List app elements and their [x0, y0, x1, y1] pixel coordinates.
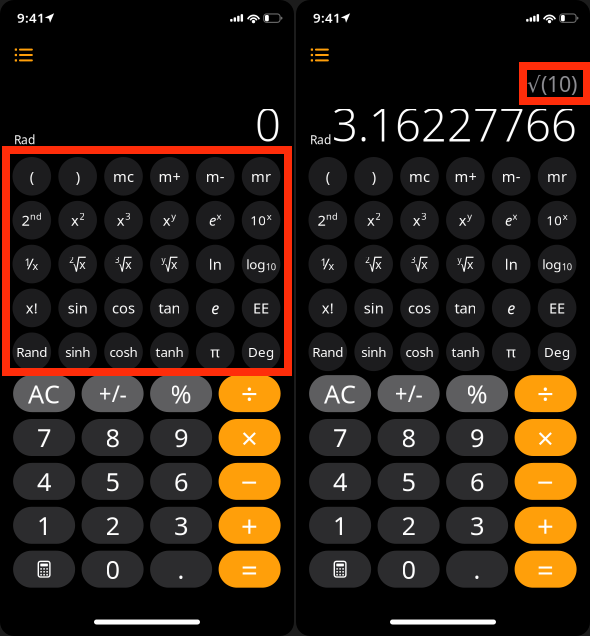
button[interactable]: mr [242, 157, 280, 196]
button[interactable]: x [58, 201, 97, 239]
button[interactable]: 5 [82, 463, 144, 500]
button[interactable]: cos [400, 289, 439, 327]
button[interactable]: 1 [13, 507, 75, 544]
button[interactable]: mc [400, 157, 439, 196]
button[interactable]: Calculator [309, 551, 371, 588]
button[interactable]: tan [150, 289, 189, 327]
button[interactable]: ) [58, 157, 97, 196]
button[interactable]: x [104, 201, 143, 239]
button[interactable]: tanh [150, 332, 189, 371]
button[interactable]: e [196, 201, 234, 239]
button[interactable]: AC [309, 375, 371, 412]
button[interactable]: 7 [309, 419, 371, 456]
button[interactable]: + [219, 507, 281, 544]
button[interactable]: mr [538, 157, 576, 196]
button[interactable]: log [538, 245, 576, 283]
button[interactable]: Rand [308, 332, 347, 371]
button[interactable]: sinh [354, 332, 393, 371]
button[interactable]: m+ [446, 157, 485, 196]
button[interactable]: ÷ [219, 375, 281, 412]
button[interactable]: 4 [13, 463, 75, 500]
button[interactable]: 3 [400, 245, 439, 283]
button[interactable]: 2 [82, 507, 144, 544]
button[interactable]: 4 [309, 463, 371, 500]
button[interactable]: +/- [378, 375, 440, 412]
button[interactable]: m- [492, 157, 530, 196]
button[interactable]: Deg [538, 332, 576, 371]
button[interactable]: 2 [378, 507, 440, 544]
button[interactable]: cosh [400, 332, 439, 371]
button[interactable]: + [515, 507, 577, 544]
button[interactable]: mc [104, 157, 143, 196]
button[interactable]: 2 [354, 245, 393, 283]
button[interactable]: cos [104, 289, 143, 327]
button[interactable]: 2 [308, 201, 347, 239]
button[interactable]: 3 [104, 245, 143, 283]
button[interactable]: ln [492, 245, 530, 283]
button[interactable]: sinh [58, 332, 97, 371]
button[interactable]: 1 [308, 245, 347, 283]
button[interactable]: 2 [12, 201, 51, 239]
button[interactable]: . [446, 551, 508, 588]
button[interactable]: y [446, 245, 485, 283]
button[interactable]: x [150, 201, 189, 239]
button[interactable]: 6 [150, 463, 212, 500]
button[interactable]: 6 [446, 463, 508, 500]
button[interactable]: sin [58, 289, 97, 327]
button[interactable]: 10 [538, 201, 576, 239]
button[interactable]: 10 [242, 201, 280, 239]
button[interactable]: e [196, 289, 234, 327]
button[interactable]: e [492, 201, 530, 239]
button[interactable]: ( [308, 157, 347, 196]
button[interactable]: tan [446, 289, 485, 327]
button[interactable]: = [219, 551, 281, 588]
button[interactable]: 9 [150, 419, 212, 456]
button[interactable]: y [150, 245, 189, 283]
button[interactable]: e [492, 289, 530, 327]
button[interactable]: +/- [82, 375, 144, 412]
button[interactable]: 3 [446, 507, 508, 544]
button[interactable]: x! [308, 289, 347, 327]
button[interactable]: % [446, 375, 508, 412]
button[interactable]: Rand [12, 332, 51, 371]
button[interactable]: 2 [58, 245, 97, 283]
button[interactable]: 3 [150, 507, 212, 544]
button[interactable]: = [515, 551, 577, 588]
button[interactable]: EE [242, 289, 280, 327]
button[interactable]: log [242, 245, 280, 283]
button[interactable]: 0 [82, 551, 144, 588]
button[interactable]: 9 [446, 419, 508, 456]
button[interactable]: History [7, 40, 41, 70]
button[interactable]: x! [12, 289, 51, 327]
button[interactable]: × [219, 419, 281, 456]
button[interactable]: cosh [104, 332, 143, 371]
button[interactable]: History [303, 40, 337, 70]
button[interactable]: ( [12, 157, 51, 196]
button[interactable]: % [150, 375, 212, 412]
button[interactable]: x [354, 201, 393, 239]
button[interactable]: ÷ [515, 375, 577, 412]
button[interactable]: 0 [378, 551, 440, 588]
button[interactable]: sin [354, 289, 393, 327]
button[interactable]: EE [538, 289, 576, 327]
button[interactable]: AC [13, 375, 75, 412]
button[interactable]: tanh [446, 332, 485, 371]
button[interactable]: x [400, 201, 439, 239]
button[interactable]: Deg [242, 332, 280, 371]
button[interactable]: π [492, 332, 530, 371]
button[interactable]: ln [196, 245, 234, 283]
button[interactable]: π [196, 332, 234, 371]
button[interactable]: m- [196, 157, 234, 196]
button[interactable]: 7 [13, 419, 75, 456]
button[interactable]: ) [354, 157, 393, 196]
button[interactable]: m+ [150, 157, 189, 196]
button[interactable]: 5 [378, 463, 440, 500]
button[interactable]: Calculator [13, 551, 75, 588]
button[interactable]: . [150, 551, 212, 588]
button[interactable]: 1 [309, 507, 371, 544]
button[interactable]: 8 [82, 419, 144, 456]
button[interactable]: 8 [378, 419, 440, 456]
button[interactable]: − [515, 463, 577, 500]
button[interactable]: − [219, 463, 281, 500]
button[interactable]: 1 [12, 245, 51, 283]
